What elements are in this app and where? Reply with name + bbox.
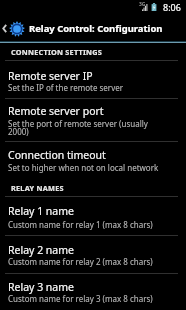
staticText: Connection timeout (8, 148, 167, 162)
staticText: Set to higher when not on local network (8, 162, 167, 173)
button[interactable]: Connection timeout (0, 142, 186, 179)
staticText: Set the port of remote server (usually 2… (8, 118, 167, 137)
staticText: Relay Control: Configuration (29, 22, 163, 35)
staticText: Remote server IP (8, 69, 167, 83)
staticText: 8:06 (163, 1, 181, 13)
staticText: Set the IP of the remote server (8, 82, 167, 93)
staticText: Custom name for relay 1 (max 8 chars) (8, 219, 167, 230)
staticText: Relay 3 name (8, 280, 167, 294)
staticText: Remote server port (8, 104, 167, 118)
staticText: CONNECTION SETTINGS (11, 47, 103, 57)
button[interactable]: Relay 1 name (0, 197, 186, 235)
staticText: Relay 2 name (8, 243, 167, 257)
button[interactable]: Remote server port (0, 99, 186, 141)
staticText: Custom name for relay 2 (max 8 chars) (8, 256, 167, 267)
staticText: 3G (139, 1, 146, 8)
button[interactable]: Navigate up (0, 13, 26, 43)
staticText: Relay 1 name (8, 204, 167, 218)
staticText: RELAY NAMES (11, 183, 64, 193)
staticText: Custom name for relay 3 (max 8 chars) (8, 293, 167, 304)
button[interactable]: Relay 2 name (0, 236, 186, 273)
button[interactable]: Relay 3 name (0, 274, 186, 310)
button[interactable]: Remote server IP (0, 61, 186, 98)
